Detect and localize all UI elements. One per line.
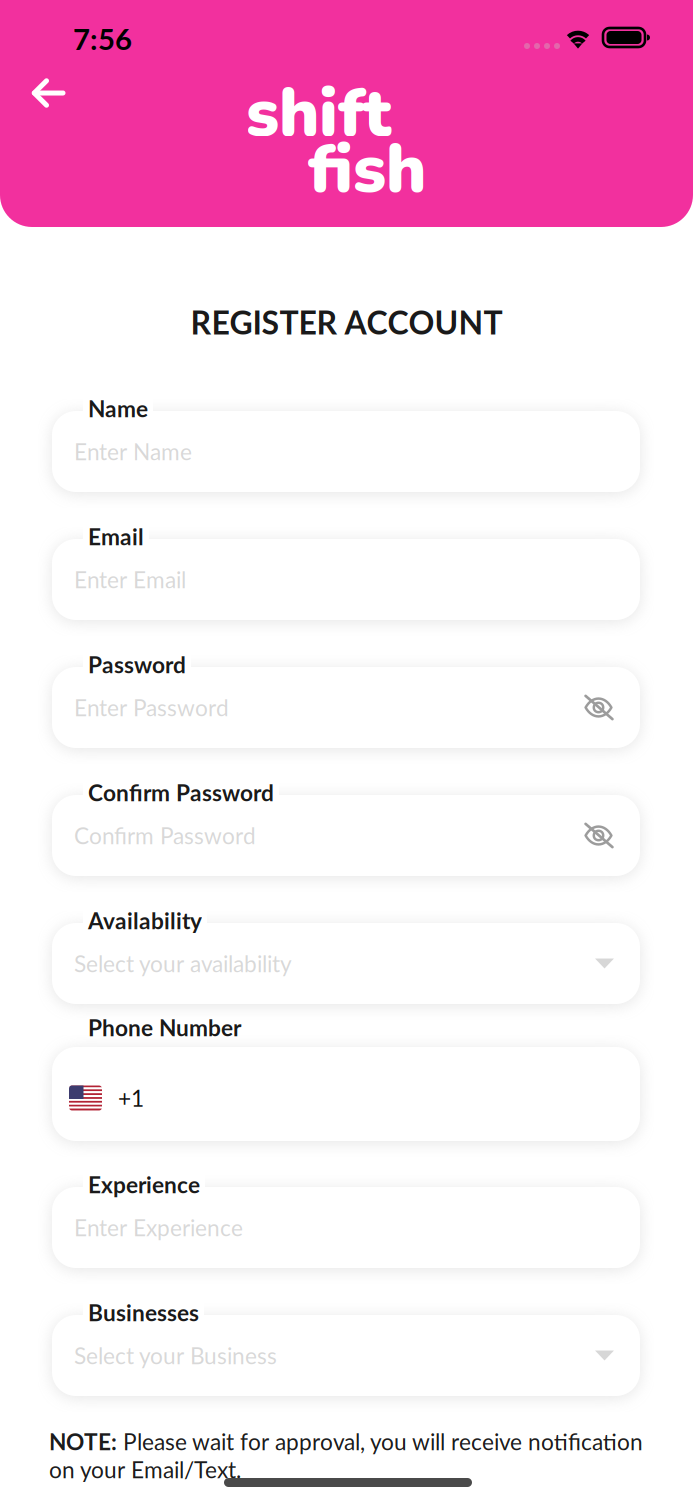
staticText: Enter Experience [74,1214,243,1241]
button[interactable]: Back [17,63,80,123]
button[interactable]: Select your availability [52,911,640,1004]
staticText: Experience [88,1171,200,1198]
staticText: Name [88,395,148,422]
staticText: REGISTER ACCOUNT [190,303,502,341]
staticText: Enter Password [74,694,229,721]
staticText: Password [88,651,186,678]
button[interactable]: Enter Name [52,399,640,492]
staticText: Email [88,523,144,550]
staticText: Select your Business [74,1342,277,1369]
staticText: NOTE: [49,1428,117,1455]
button[interactable]: Select your Business [52,1303,640,1396]
staticText: Confirm Password [88,779,274,806]
staticText: +1 [118,1084,144,1112]
staticText: Availability [88,907,202,934]
button[interactable]: Enter Experience [52,1175,640,1268]
staticText: shift [246,68,391,159]
staticText: on your Email/Text. [49,1456,241,1483]
staticText: 7:56 [73,21,132,56]
staticText: Phone Number [88,1014,241,1041]
staticText: Select your availability [74,950,292,977]
staticText: Please wait for approval, you will recei… [117,1428,643,1455]
staticText: Confirm Password [74,822,256,849]
staticText: Businesses [88,1299,199,1326]
staticText: Enter Name [74,438,192,465]
staticText: fish [308,124,426,215]
button[interactable]: Confirm Password [52,783,640,876]
staticText: Enter Email [74,566,186,593]
button[interactable]: +1 [52,1018,640,1141]
button[interactable]: Enter Email [52,527,640,620]
button[interactable]: Enter Password [52,655,640,748]
